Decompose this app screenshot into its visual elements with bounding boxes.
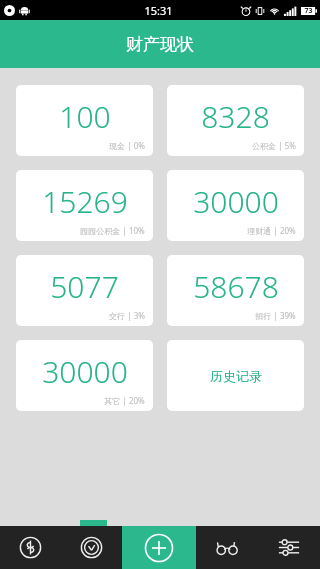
staticText: 其它 | 20% — [104, 395, 145, 406]
staticText: 30000 — [42, 351, 128, 392]
staticText: 5077 — [50, 266, 119, 307]
button[interactable]: 历史记录 — [167, 340, 304, 411]
button[interactable]: Budget — [61, 526, 122, 569]
staticText: 8328 — [201, 96, 270, 137]
staticText: 交行 | 3% — [109, 310, 145, 321]
staticText: 73 — [304, 6, 313, 16]
staticText: 15269 — [42, 181, 128, 222]
button[interactable]: 30000 — [167, 170, 304, 241]
staticText: 30000 — [193, 181, 279, 222]
button[interactable]: 100 — [16, 85, 153, 156]
button[interactable]: 30000 — [16, 340, 153, 411]
staticText: 招行 | 39% — [255, 310, 296, 321]
button[interactable]: 58678 — [167, 255, 304, 326]
button[interactable]: Money — [0, 526, 61, 569]
staticText: 历史记录 — [210, 368, 262, 384]
button[interactable]: 15269 — [16, 170, 153, 241]
staticText: 理财通 | 20% — [247, 225, 296, 236]
staticText: 公积金 | 5% — [252, 140, 296, 151]
staticText: 100 — [59, 96, 111, 137]
staticText: 15:31 — [144, 3, 173, 18]
button[interactable]: Add — [122, 526, 196, 569]
button[interactable]: Review — [196, 526, 258, 569]
staticText: 58678 — [193, 266, 279, 307]
staticText: 财产现状 — [126, 34, 194, 55]
button[interactable]: 8328 — [167, 85, 304, 156]
button[interactable]: Settings — [258, 526, 320, 569]
staticText: 现金 | 0% — [109, 140, 145, 151]
staticText: 园园公积金 | 10% — [80, 225, 145, 236]
button[interactable]: 5077 — [16, 255, 153, 326]
